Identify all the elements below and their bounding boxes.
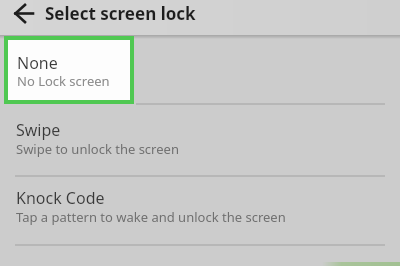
staticText: Tap a pattern to wake and unlock the scr… [16,208,286,226]
staticText: None [17,52,58,74]
staticText: No Lock screen [17,72,110,90]
staticText: Swipe to unlock the screen [16,140,179,158]
button[interactable]: Knock Code [0,176,400,243]
button[interactable] [12,3,38,25]
staticText: Knock Code [16,187,105,209]
staticText: Swipe [16,119,61,141]
button[interactable]: Swipe [0,106,400,174]
button[interactable] [4,36,134,104]
staticText: Select screen lock [45,2,196,25]
button[interactable]: Select screen lock [0,0,400,35]
